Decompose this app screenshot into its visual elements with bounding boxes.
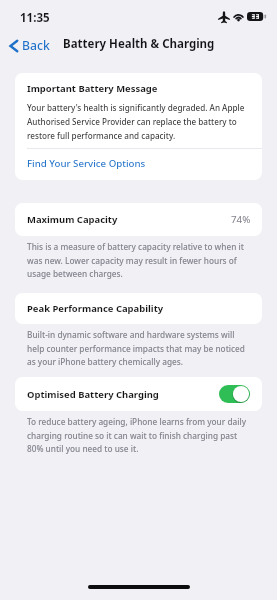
staticText: Battery Health & Charging	[63, 36, 215, 52]
staticText: Find Your Service Options	[27, 157, 146, 170]
staticText: 11:35	[20, 10, 50, 26]
button[interactable]: Back	[0, 32, 57, 59]
staticText: To reduce battery ageing, iPhone learns …	[27, 416, 247, 454]
staticText: Optimised Battery Charging	[27, 388, 159, 401]
staticText: Your battery's health is significantly d…	[27, 102, 245, 141]
staticText: This is a measure of battery capacity re…	[27, 241, 244, 279]
staticText: 74%	[231, 213, 251, 226]
staticText: Built-in dynamic software and hardware s…	[27, 329, 245, 367]
button[interactable]: Optimised Battery Charging	[15, 377, 262, 411]
button[interactable]: Peak Performance Capability	[15, 293, 262, 324]
button[interactable]: Optimised Battery Charging, on	[219, 385, 250, 403]
button[interactable]: Find Your Service Options	[15, 149, 262, 180]
staticText: Back	[22, 37, 50, 54]
staticText: Maximum Capacity	[27, 213, 118, 226]
staticText: Important Battery Message	[27, 82, 158, 95]
button[interactable]: Maximum Capacity	[15, 203, 262, 236]
staticText: Peak Performance Capability	[27, 302, 164, 315]
